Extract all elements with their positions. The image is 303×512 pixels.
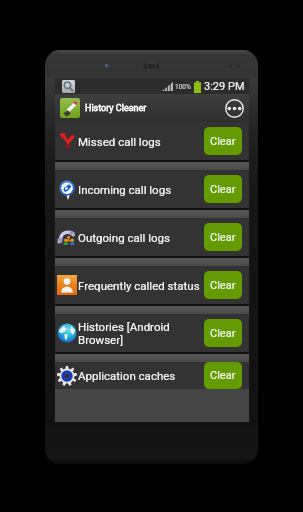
button[interactable]: Frequently called status — [55, 266, 249, 304]
button[interactable]: Clear — [204, 223, 242, 251]
staticText: Application caches — [78, 369, 204, 382]
staticText: History Cleaner — [85, 103, 147, 114]
button[interactable]: More options — [221, 95, 247, 121]
staticText: Clear — [210, 279, 236, 292]
staticText: Outgoing call logs — [78, 231, 204, 244]
button[interactable]: Clear — [204, 175, 242, 203]
button[interactable]: Incoming call logs — [55, 170, 249, 208]
button[interactable]: Missed call logs — [55, 122, 249, 160]
button[interactable]: Clear — [204, 271, 242, 299]
button[interactable]: Outgoing call logs — [55, 218, 249, 256]
staticText: Clear — [210, 135, 236, 148]
button[interactable]: Application caches — [55, 362, 249, 389]
button[interactable]: Clear — [204, 127, 242, 155]
staticText: Clear — [210, 369, 236, 382]
staticText: 100% — [175, 83, 191, 91]
staticText: Frequently called status — [78, 279, 204, 292]
staticText: Clear — [210, 183, 236, 196]
staticText: 3:29 PM — [204, 80, 245, 93]
staticText: Histories [Android Browser] — [78, 320, 204, 346]
button[interactable]: Clear — [204, 362, 242, 389]
staticText: Clear — [210, 231, 236, 244]
button[interactable]: Histories [Android Browser] — [55, 314, 249, 352]
staticText: Incoming call logs — [78, 183, 204, 196]
button[interactable]: Clear — [204, 319, 242, 347]
staticText: Clear — [210, 327, 236, 340]
staticText: Missed call logs — [78, 135, 204, 148]
